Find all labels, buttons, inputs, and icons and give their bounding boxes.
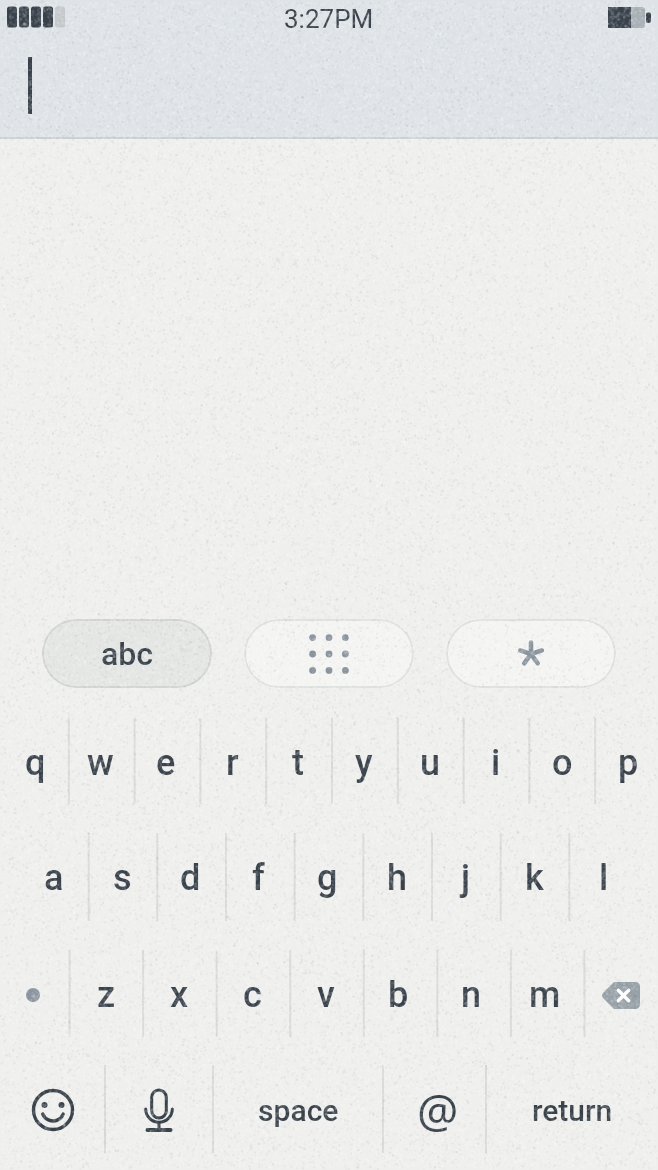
button[interactable] <box>244 619 414 688</box>
staticText: @ <box>417 1079 459 1142</box>
staticText: d <box>180 857 201 899</box>
button[interactable]: return <box>486 1063 658 1157</box>
staticText: return <box>532 1093 613 1128</box>
staticText: c <box>243 974 262 1016</box>
button[interactable]: y <box>331 716 397 810</box>
button[interactable]: j <box>431 831 500 925</box>
button[interactable]: g <box>293 831 362 925</box>
button[interactable]: abc <box>42 619 212 688</box>
button[interactable]: w <box>68 716 133 810</box>
staticText: x <box>170 974 189 1016</box>
staticText: q <box>25 742 46 784</box>
staticText: a <box>44 857 64 899</box>
button[interactable]: v <box>289 948 362 1042</box>
button[interactable]: d <box>156 831 224 925</box>
button[interactable]: x <box>143 948 216 1042</box>
button[interactable]: h <box>362 831 431 925</box>
staticText: s <box>113 857 132 899</box>
staticText: y <box>355 742 373 784</box>
staticText: l <box>599 857 609 899</box>
staticText: h <box>387 857 407 899</box>
staticText: k <box>525 857 544 899</box>
button[interactable]: k <box>500 831 569 925</box>
staticText: m <box>529 974 561 1016</box>
button[interactable]: c <box>216 948 289 1042</box>
staticText: n <box>461 974 482 1016</box>
button[interactable] <box>581 948 654 1042</box>
button[interactable]: r <box>199 716 265 810</box>
staticText: p <box>618 742 639 784</box>
staticText: space <box>258 1093 339 1128</box>
staticText: f <box>252 857 265 899</box>
button[interactable]: s <box>88 831 156 925</box>
button[interactable]: a <box>20 831 88 925</box>
staticText: g <box>317 857 338 899</box>
button[interactable] <box>446 619 616 688</box>
button[interactable]: o <box>529 716 595 810</box>
button[interactable]: z <box>70 948 143 1042</box>
button[interactable]: f <box>224 831 293 925</box>
staticText: i <box>491 742 501 784</box>
button[interactable] <box>105 1063 213 1157</box>
button[interactable] <box>0 948 70 1042</box>
staticText: j <box>461 857 471 899</box>
button[interactable]: i <box>463 716 529 810</box>
button[interactable]: b <box>362 948 435 1042</box>
staticText: z <box>97 974 116 1016</box>
button[interactable]: u <box>397 716 463 810</box>
button[interactable]: m <box>508 948 581 1042</box>
button[interactable]: t <box>265 716 331 810</box>
button[interactable]: e <box>133 716 199 810</box>
staticText: b <box>388 974 409 1016</box>
button[interactable]: q <box>3 716 68 810</box>
button[interactable]: l <box>569 831 638 925</box>
button[interactable]: space <box>213 1063 383 1157</box>
button[interactable]: p <box>595 716 658 810</box>
button[interactable]: n <box>435 948 508 1042</box>
staticText: v <box>317 974 335 1016</box>
staticText: r <box>226 742 239 784</box>
button[interactable] <box>0 1063 105 1157</box>
staticText: o <box>552 742 573 784</box>
staticText: abc <box>101 635 154 673</box>
staticText: t <box>292 742 304 784</box>
staticText: 3:27PM <box>284 4 374 34</box>
staticText: u <box>420 742 441 784</box>
staticText: e <box>156 742 176 784</box>
button[interactable]: @ <box>383 1063 486 1157</box>
staticText: w <box>87 742 114 784</box>
